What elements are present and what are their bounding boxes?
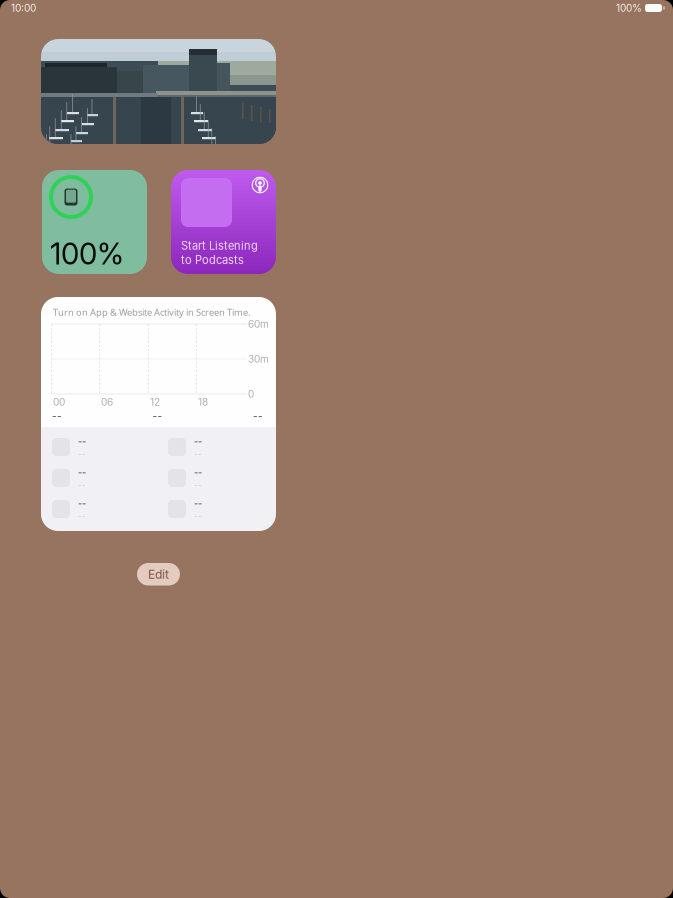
- staticText: --: [194, 435, 202, 447]
- button[interactable]: Photos widget: [41, 39, 276, 144]
- staticText: --: [52, 410, 62, 422]
- staticText: Edit: [148, 567, 169, 581]
- staticText: 10:00: [11, 2, 36, 14]
- staticText: --: [78, 449, 86, 458]
- staticText: --: [194, 497, 202, 509]
- staticText: 06: [101, 396, 113, 408]
- staticText: Start Listening: [181, 239, 258, 252]
- staticText: 18: [198, 396, 208, 408]
- staticText: --: [194, 449, 202, 458]
- staticText: --: [253, 410, 263, 422]
- staticText: --: [78, 511, 86, 520]
- button[interactable]: Batteries widget, 100 percent: [42, 170, 147, 274]
- button[interactable]: Screen Time widget: [41, 297, 276, 531]
- staticText: --: [78, 480, 86, 489]
- staticText: 100%: [616, 2, 642, 14]
- staticText: 12: [150, 396, 160, 408]
- staticText: --: [78, 466, 86, 478]
- staticText: --: [152, 410, 162, 422]
- staticText: --: [194, 511, 202, 520]
- button[interactable]: Podcasts widget, Start Listening to Podc…: [171, 170, 276, 274]
- staticText: 30m: [248, 353, 269, 365]
- staticText: 100%: [50, 236, 124, 271]
- staticText: 00: [53, 396, 65, 408]
- staticText: --: [194, 466, 202, 478]
- staticText: to Podcasts: [181, 253, 244, 267]
- staticText: Turn on App & Website Activity in Screen…: [53, 306, 251, 318]
- button[interactable]: Edit: [137, 563, 180, 585]
- staticText: --: [78, 435, 86, 447]
- staticText: --: [78, 497, 86, 509]
- staticText: --: [194, 480, 202, 489]
- staticText: 60m: [248, 318, 269, 330]
- staticText: 0: [248, 388, 254, 400]
